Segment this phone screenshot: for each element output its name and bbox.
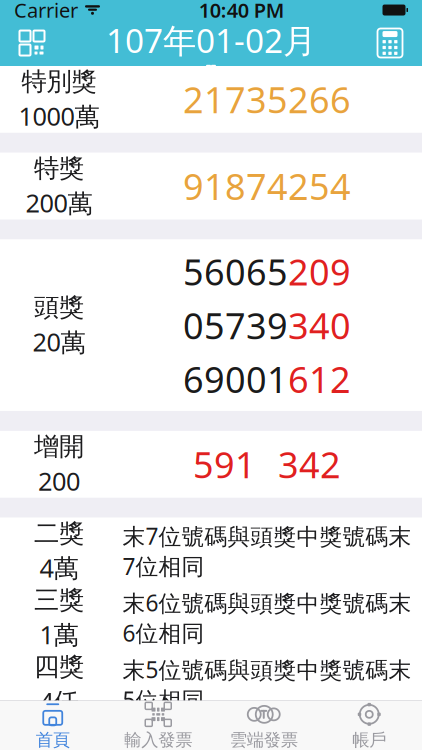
staticText: 帳戶 xyxy=(352,729,386,750)
button[interactable]: 輸入發票 xyxy=(105,696,211,750)
staticText: 107年01-02月 xyxy=(106,18,316,62)
staticText: 591 xyxy=(193,440,256,488)
staticText: 10:40 PM xyxy=(199,0,285,23)
staticText: 二獎 xyxy=(34,518,84,549)
staticText: 56065 xyxy=(183,247,288,295)
staticText: 四獎 xyxy=(34,651,84,682)
staticText: 20萬 xyxy=(32,325,85,359)
staticText: 三獎 xyxy=(34,584,84,616)
button[interactable]: 107年01-02月 xyxy=(96,21,326,65)
staticText: 200 xyxy=(38,464,80,498)
staticText: 頭獎 xyxy=(34,292,84,323)
staticText: 200萬 xyxy=(25,186,92,219)
staticText: Carrier xyxy=(14,0,78,23)
staticText: 末7位號碼與頭獎中獎號碼末7位相同 xyxy=(122,521,411,581)
button[interactable]: 雲端發票 xyxy=(211,696,316,750)
staticText: 末4位號碼與頭獎中獎號碼末4位相同 xyxy=(122,721,411,750)
staticText: 4萬 xyxy=(39,551,78,584)
button[interactable]: 帳戶 xyxy=(316,696,422,750)
staticText: 增開 xyxy=(34,431,84,462)
staticText: 雲端發票 xyxy=(230,729,298,750)
staticText: 209 xyxy=(288,247,351,295)
staticText: 特別獎 xyxy=(21,66,96,97)
staticText: 輸入發票 xyxy=(124,729,192,750)
staticText: 首頁 xyxy=(36,729,70,750)
staticText: 91874254 xyxy=(183,162,351,210)
staticText: 342 xyxy=(278,440,341,488)
button[interactable]: 首頁 xyxy=(0,696,105,750)
staticText: 69001 xyxy=(183,355,288,403)
button[interactable]: 對獎計算機 xyxy=(364,21,416,65)
staticText: 21735266 xyxy=(183,75,351,123)
staticText: 五獎 xyxy=(34,718,84,749)
staticText: 340 xyxy=(288,301,351,349)
staticText: 末6位號碼與頭獎中獎號碼末6位相同 xyxy=(122,588,411,648)
button[interactable]: 掃描條碼 xyxy=(6,21,58,65)
staticText: 612 xyxy=(288,355,351,403)
staticText: 1000萬 xyxy=(18,99,99,133)
staticText: 1萬 xyxy=(39,618,78,651)
staticText: 4仟 xyxy=(39,684,78,718)
staticText: 05739 xyxy=(183,301,288,349)
staticText: 特獎 xyxy=(34,153,84,184)
staticText: 末5位號碼與頭獎中獎號碼末5位相同 xyxy=(122,654,411,715)
